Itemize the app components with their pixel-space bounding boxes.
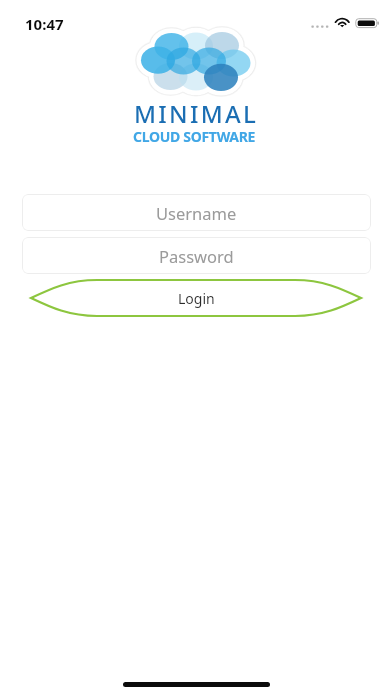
staticText: Login <box>178 289 215 308</box>
staticText: MINIMAL <box>134 97 258 130</box>
button[interactable]: Username <box>22 194 371 231</box>
staticText: 10:47 <box>25 14 64 34</box>
button[interactable]: Login <box>21 276 371 320</box>
staticText: Username <box>156 202 237 224</box>
button[interactable]: Password <box>22 237 371 274</box>
staticText: CLOUD SOFTWARE <box>133 127 256 146</box>
staticText: Password <box>159 245 234 267</box>
